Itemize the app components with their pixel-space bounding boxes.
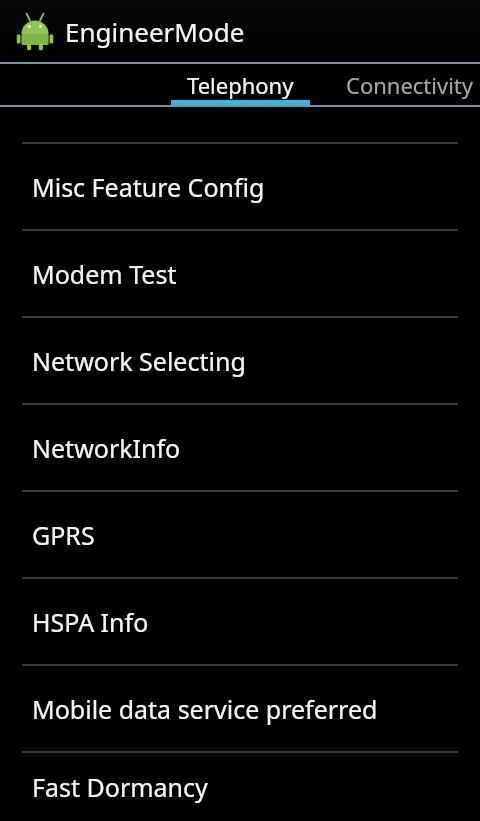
staticText: Connectivity bbox=[346, 70, 474, 100]
staticText: Telephony bbox=[187, 70, 294, 100]
staticText: GPRS bbox=[32, 518, 95, 552]
button[interactable]: Fast Dormancy bbox=[0, 751, 480, 821]
staticText: NetworkInfo bbox=[32, 431, 181, 465]
staticText: Fast Dormancy bbox=[32, 770, 208, 804]
button[interactable]: GPRS bbox=[0, 490, 480, 577]
staticText: Misc Feature Config bbox=[32, 170, 265, 204]
staticText: Modem Test bbox=[32, 257, 177, 291]
button[interactable]: Modem Test bbox=[0, 229, 480, 316]
other: EngineerMode app icon bbox=[14, 10, 56, 52]
button[interactable]: Mobile data service preferred bbox=[0, 664, 480, 751]
button[interactable]: Misc Feature Config bbox=[0, 142, 480, 229]
staticText: Network Selecting bbox=[32, 344, 246, 378]
button[interactable]: Connectivity bbox=[310, 64, 480, 105]
button[interactable]: NetworkInfo bbox=[0, 403, 480, 490]
button[interactable]: Network Selecting bbox=[0, 316, 480, 403]
staticText: Mobile data service preferred bbox=[32, 692, 378, 726]
staticText: EngineerMode bbox=[65, 14, 245, 49]
staticText: HSPA Info bbox=[32, 605, 149, 639]
button[interactable]: Telephony bbox=[171, 64, 310, 105]
button[interactable]: HSPA Info bbox=[0, 577, 480, 664]
